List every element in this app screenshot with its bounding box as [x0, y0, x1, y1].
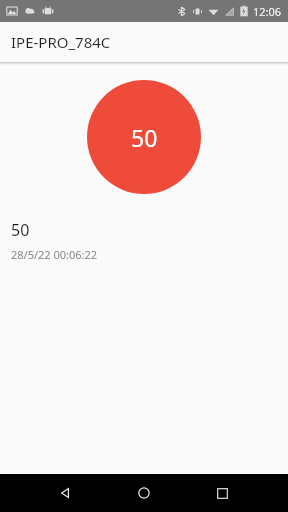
staticText: 50 [131, 122, 158, 153]
staticText: 12:06 [253, 4, 282, 19]
button[interactable]: Back [48, 476, 82, 510]
staticText: 28/5/22 00:06:22 [11, 247, 98, 262]
button[interactable]: Recent apps [205, 476, 239, 510]
button[interactable]: 50 [0, 217, 288, 268]
staticText: 50 [11, 219, 30, 241]
staticText: IPE-PRO_784C [11, 32, 111, 52]
button[interactable]: 50 [87, 80, 201, 194]
button[interactable]: Home [127, 476, 161, 510]
